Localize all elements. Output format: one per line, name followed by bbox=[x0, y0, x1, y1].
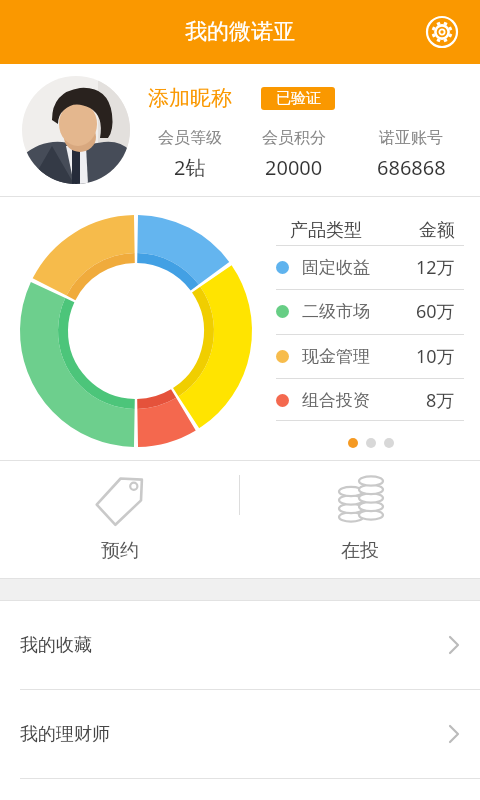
staticText: 产品类型 bbox=[290, 219, 362, 242]
staticText: 我的微诺亚 bbox=[185, 18, 295, 46]
staticText: 组合投资 bbox=[302, 390, 370, 411]
button[interactable]: 二级市场 bbox=[276, 289, 464, 333]
button[interactable] bbox=[422, 12, 462, 52]
button[interactable]: 我的理财师 bbox=[0, 690, 480, 778]
staticText: 我的收藏 bbox=[20, 634, 92, 657]
button[interactable]: 组合投资 bbox=[276, 378, 464, 422]
staticText: 在投 bbox=[341, 539, 379, 563]
staticText: 预约 bbox=[101, 539, 139, 563]
button[interactable]: 预约 bbox=[0, 461, 240, 578]
staticText: 会员等级 bbox=[158, 128, 222, 148]
staticText: 10万 bbox=[416, 344, 455, 369]
staticText: 我的理财师 bbox=[20, 723, 110, 746]
staticText: 二级市场 bbox=[302, 301, 370, 322]
staticText: 会员积分 bbox=[262, 128, 326, 148]
button[interactable]: 在投 bbox=[240, 461, 480, 578]
staticText: 添加昵称 bbox=[148, 85, 232, 111]
staticText: 金额 bbox=[419, 219, 455, 242]
staticText: 8万 bbox=[426, 388, 455, 413]
staticText: 已验证 bbox=[276, 89, 321, 108]
button[interactable]: 我的收藏 bbox=[0, 601, 480, 689]
staticText: 现金管理 bbox=[302, 346, 370, 367]
staticText: 686868 bbox=[377, 154, 446, 181]
staticText: 2钻 bbox=[174, 154, 206, 181]
staticText: 固定收益 bbox=[302, 257, 370, 278]
button[interactable]: 现金管理 bbox=[276, 334, 464, 378]
staticText: 60万 bbox=[416, 299, 455, 324]
staticText: 20000 bbox=[265, 154, 323, 181]
button[interactable]: 添加昵称 bbox=[0, 64, 480, 196]
staticText: 诺亚账号 bbox=[379, 128, 443, 148]
button[interactable]: 固定收益 bbox=[276, 245, 464, 289]
staticText: 12万 bbox=[416, 255, 455, 280]
